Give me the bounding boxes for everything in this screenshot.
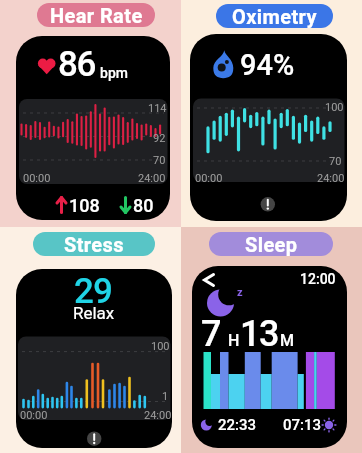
staticText: H xyxy=(228,331,240,350)
staticText: 24:00 xyxy=(138,172,166,185)
button[interactable]: 86 xyxy=(16,36,170,220)
staticText: 00:00 xyxy=(195,172,223,185)
staticText: M xyxy=(280,331,295,350)
staticText: bpm xyxy=(100,65,128,81)
staticText: z xyxy=(237,286,243,299)
button[interactable]: 29 xyxy=(16,269,172,448)
staticText: 07:13 xyxy=(283,416,322,434)
staticText: 1 xyxy=(162,390,169,403)
staticText: 108 xyxy=(69,195,100,216)
button[interactable]: Stress xyxy=(33,232,155,256)
button[interactable]: Sleep xyxy=(209,232,333,256)
staticText: Relax xyxy=(73,303,115,323)
staticText: 22:33 xyxy=(218,416,257,434)
staticText: 70 xyxy=(153,154,166,167)
staticText: Oximetry xyxy=(232,5,317,28)
staticText: 00:00 xyxy=(23,172,51,185)
staticText: 24:00 xyxy=(144,409,172,422)
staticText: 100 xyxy=(151,340,170,353)
staticText: 70 xyxy=(329,155,342,168)
button[interactable]: Hear Rate xyxy=(37,3,155,27)
staticText: 7 xyxy=(201,313,222,355)
button[interactable]: z xyxy=(192,266,347,448)
staticText: 92 xyxy=(153,132,166,145)
staticText: 100 xyxy=(325,101,344,114)
staticText: 86 xyxy=(58,44,95,85)
staticText: Hear Rate xyxy=(50,4,143,27)
staticText: Stress xyxy=(64,233,124,256)
staticText: 13 xyxy=(240,313,278,355)
staticText: 24:00 xyxy=(317,172,345,185)
button[interactable]: 94% xyxy=(190,34,347,221)
staticText: 12:00 xyxy=(300,271,336,287)
staticText: 114 xyxy=(148,102,167,115)
staticText: 80 xyxy=(133,195,154,216)
staticText: 29 xyxy=(74,271,112,312)
staticText: Sleep xyxy=(245,233,298,256)
button[interactable]: Oximetry xyxy=(216,4,333,28)
staticText: 00:00 xyxy=(20,409,48,422)
staticText: 94% xyxy=(240,48,295,82)
